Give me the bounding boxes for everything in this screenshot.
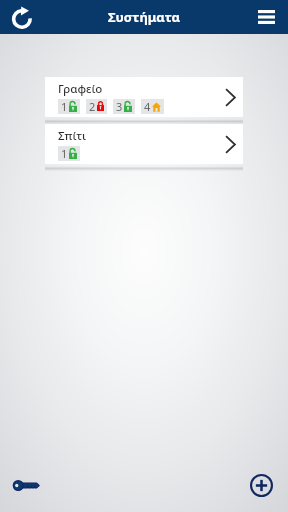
button[interactable]: Σπίτι (45, 124, 243, 164)
staticText: 1 (61, 99, 68, 114)
staticText: Σπίτι (58, 128, 87, 144)
staticText: Συστήματα (108, 8, 181, 26)
button[interactable]: Keys (7, 473, 45, 498)
staticText: 4 (144, 99, 151, 114)
button[interactable]: Refresh (7, 3, 36, 32)
staticText: Γραφείο (58, 81, 103, 97)
button[interactable]: Γραφείο (45, 77, 243, 117)
button[interactable]: Menu (252, 3, 280, 31)
staticText: 1 (61, 146, 68, 161)
staticText: 3 (116, 99, 123, 114)
staticText: 2 (89, 99, 96, 114)
button[interactable]: Add system (247, 471, 275, 499)
